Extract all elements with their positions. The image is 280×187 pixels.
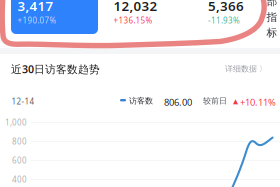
staticText: +136.15% <box>113 15 152 26</box>
staticText: 详细数据 〉 <box>225 64 267 74</box>
staticText: -11.93% <box>208 15 240 26</box>
staticText: 5,366 <box>208 0 244 15</box>
staticText: 3,417 <box>17 0 53 15</box>
staticText: 指 <box>266 11 277 24</box>
staticText: 12-14 <box>11 96 34 107</box>
button[interactable]: 详细数据 〉 <box>225 64 267 74</box>
staticText: 1,000 <box>5 117 27 128</box>
staticText: 400 <box>12 174 27 185</box>
staticText: 近30日访客数趋势 <box>11 62 100 76</box>
staticText: 部 <box>266 0 277 8</box>
staticText: +190.07% <box>17 15 56 26</box>
staticText: 800 <box>12 136 27 147</box>
staticText: 12,032 <box>113 0 157 15</box>
staticText: 806.00 <box>164 96 192 108</box>
staticText: 访客数 <box>129 96 153 106</box>
button[interactable]: 全部指标 <box>266 0 278 39</box>
staticText: 较前日 <box>203 96 227 106</box>
staticText: 600 <box>12 155 27 166</box>
staticText: +10.11% <box>240 96 276 108</box>
staticText: 标 <box>266 26 277 39</box>
staticText: ▲ <box>233 97 238 105</box>
